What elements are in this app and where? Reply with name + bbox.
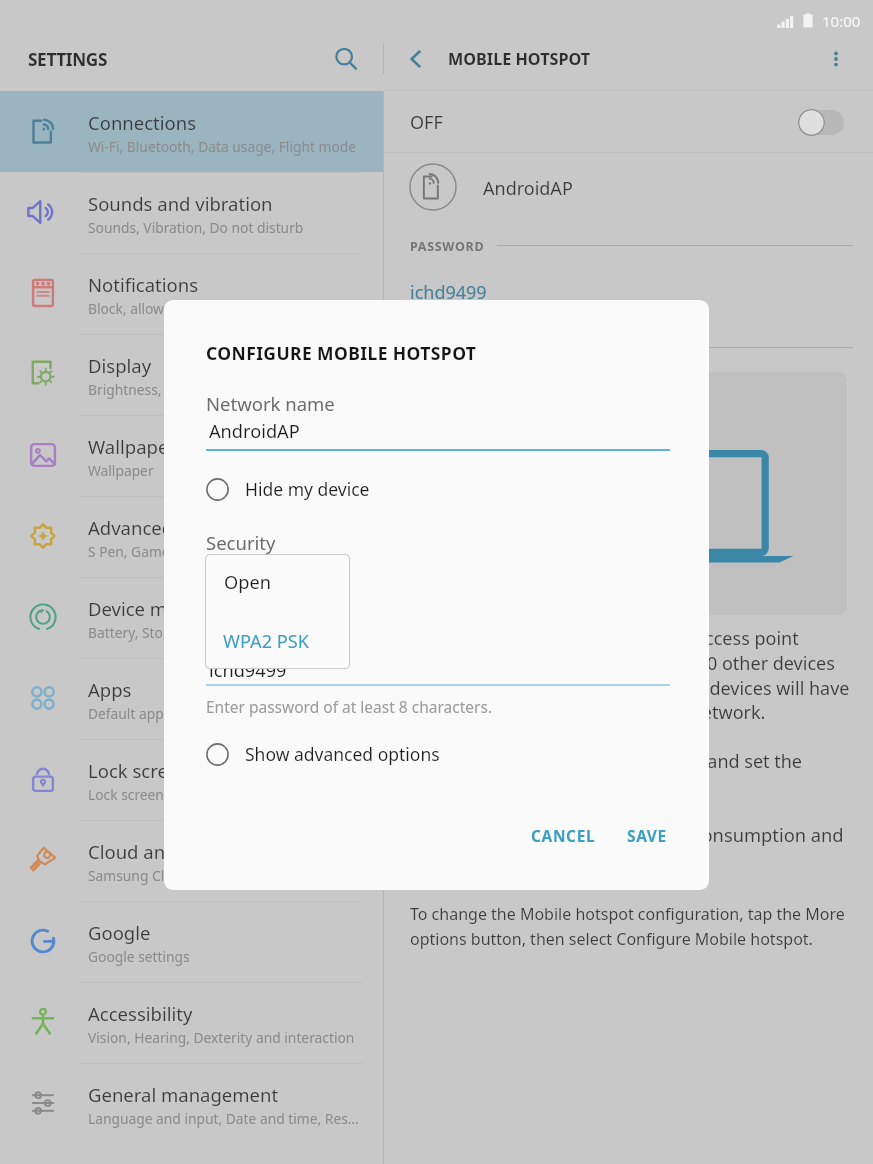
staticText: ichd9499 <box>410 280 487 305</box>
staticText: Enter password of at least 8 characters. <box>206 696 492 717</box>
staticText: CANCEL <box>531 825 596 846</box>
staticText: Hide my device <box>245 477 370 501</box>
staticText: Wallpaper <box>88 461 154 480</box>
button[interactable]: Search <box>324 37 368 81</box>
staticText: Cloud and accounts <box>88 839 260 864</box>
button[interactable]: Hide my device <box>204 469 434 509</box>
staticText: You can change the network name and set … <box>410 749 802 774</box>
staticText: Device maintenance <box>88 596 264 621</box>
button[interactable]: CANCEL <box>521 811 605 859</box>
staticText: options button, then select Configure Mo… <box>410 928 813 950</box>
staticText: Block, allow, prioritise <box>88 299 229 318</box>
staticText: MOBILE HOTSPOT <box>448 48 591 70</box>
staticText: Connections <box>88 110 197 135</box>
button[interactable]: SAVE <box>615 811 679 859</box>
staticText: access to your connected mobile network. <box>410 700 766 725</box>
staticText: Google settings <box>88 947 190 966</box>
staticText: Wallpaper <box>88 434 176 459</box>
button[interactable]: Display <box>0 334 383 415</box>
staticText: Lock screen and security <box>88 758 301 783</box>
button[interactable]: Notifications <box>0 253 383 334</box>
button[interactable]: Google <box>0 901 383 982</box>
staticText: Apps <box>88 677 132 702</box>
button[interactable]: More options <box>814 37 858 81</box>
button[interactable]: Accessibility <box>0 982 383 1063</box>
staticText: PASSWORD <box>410 238 485 255</box>
staticText: WPA2 PSK <box>223 629 310 654</box>
button[interactable]: Back <box>394 37 438 81</box>
staticText: ichd9499 <box>209 658 287 683</box>
staticText: S Pen, Games, One-handed mode <box>88 542 306 561</box>
staticText: Sounds, Vibration, Do not disturb <box>88 218 304 237</box>
staticText: Use your device as a mobile Wi-Fi access… <box>410 626 799 651</box>
button[interactable]: Device maintenance <box>0 577 383 658</box>
button[interactable]: Show advanced options <box>204 734 504 774</box>
staticText: Accessibility <box>88 1001 193 1026</box>
staticText: OFF <box>410 110 443 135</box>
staticText: SETTINGS <box>28 48 108 71</box>
button[interactable]: Sounds and vibration <box>0 172 383 253</box>
staticText: Notifications <box>88 272 199 297</box>
staticText: SAVE <box>627 825 667 846</box>
button[interactable]: WPA2 PSK <box>205 612 350 669</box>
staticText: AndroidAP <box>483 176 573 201</box>
staticText: Brightness, Blue light filter, Screen <box>88 380 310 399</box>
button[interactable]: Mobile hotspot toggle <box>798 109 844 136</box>
button[interactable] <box>384 91 873 152</box>
button[interactable] <box>384 153 873 223</box>
button[interactable]: Apps <box>0 658 383 739</box>
staticText: Display <box>88 353 152 378</box>
staticText: Security <box>206 530 276 555</box>
staticText: Network name <box>206 391 335 416</box>
staticText: To change the Mobile hotspot configurati… <box>410 903 845 925</box>
staticText: CONFIGURE MOBILE HOTSPOT <box>206 341 477 365</box>
staticText: Be careful of extra costs for data consu… <box>410 822 844 847</box>
staticText: AndroidAP <box>209 419 300 444</box>
staticText: at the same time. These connected device… <box>410 676 850 701</box>
staticText: Google <box>88 920 151 945</box>
staticText: Wi-Fi, Bluetooth, Data usage, Flight mod… <box>88 137 357 156</box>
staticText: Advanced features <box>88 515 250 540</box>
staticText: Show advanced options <box>245 742 440 766</box>
staticText: Sounds and vibration <box>88 191 273 216</box>
staticText: Lock screen, Fingerprints <box>88 785 251 804</box>
staticText: 10:00 <box>822 11 861 31</box>
staticText: Vision, Hearing, Dexterity and interacti… <box>88 1028 355 1047</box>
button[interactable]: Open <box>205 554 350 612</box>
staticText: Default apps, App permissions <box>88 704 286 723</box>
button[interactable]: Advanced features <box>0 496 383 577</box>
staticText: Open <box>224 570 271 595</box>
button[interactable]: General management <box>0 1063 383 1144</box>
staticText: General management <box>88 1082 279 1107</box>
button[interactable]: Cloud and accounts <box>0 820 383 901</box>
button[interactable]: Lock screen and security <box>0 739 383 820</box>
button[interactable]: Wallpaper <box>0 415 383 496</box>
staticText: Battery, Storage, Memory <box>88 623 254 642</box>
staticText: Samsung Cloud, Backup and restore <box>88 866 323 885</box>
button[interactable]: Connections <box>0 91 383 172</box>
staticText: Language and input, Date and time, Res… <box>88 1109 359 1128</box>
staticText: to share its connection with up to 10 ot… <box>410 651 835 676</box>
